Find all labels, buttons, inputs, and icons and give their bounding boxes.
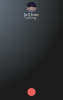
staticText: calling… xyxy=(24,15,38,20)
staticText: Jo Chen xyxy=(24,12,39,17)
button[interactable]: End Call xyxy=(27,88,35,96)
